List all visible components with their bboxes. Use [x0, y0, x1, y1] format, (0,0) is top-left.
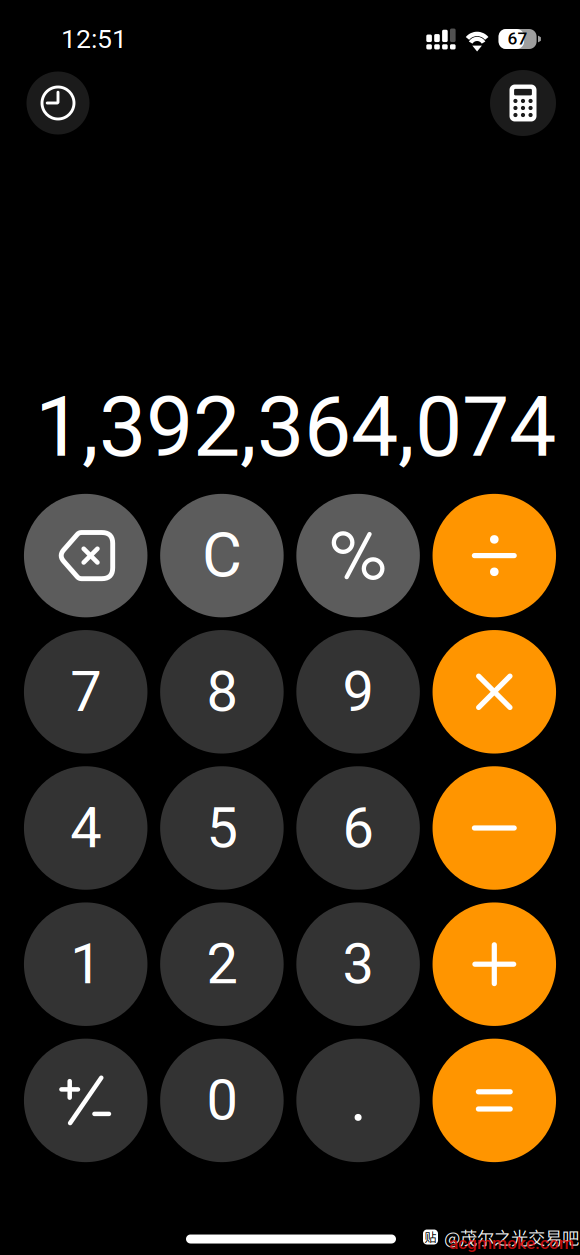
- button[interactable]: 2: [160, 902, 284, 1026]
- button[interactable]: 1: [24, 902, 147, 1026]
- button[interactable]: 5: [160, 766, 284, 890]
- staticText: 2: [206, 931, 237, 997]
- button[interactable]: Toggle sign: [24, 1039, 147, 1162]
- button[interactable]: Percent: [296, 494, 420, 617]
- staticText: acgmmoke.com: [449, 1233, 574, 1253]
- staticText: 7: [70, 659, 101, 725]
- button[interactable]: Subtract: [432, 766, 556, 890]
- button[interactable]: 4: [24, 766, 147, 890]
- button[interactable]: Equals: [432, 1039, 556, 1162]
- button[interactable]: C: [160, 494, 284, 617]
- staticText: 8: [206, 659, 237, 725]
- button[interactable]: Divide: [432, 494, 556, 617]
- button[interactable]: 7: [24, 630, 147, 753]
- button[interactable]: Add: [432, 902, 556, 1026]
- staticText: 6: [343, 795, 374, 861]
- staticText: 3: [343, 931, 374, 997]
- staticText: 12:51: [61, 23, 127, 55]
- staticText: 0: [206, 1068, 237, 1133]
- button[interactable]: Delete: [24, 494, 147, 617]
- button[interactable]: 3: [296, 902, 420, 1026]
- staticText: 5: [206, 795, 237, 861]
- button[interactable]: Decimal point: [296, 1039, 420, 1162]
- button[interactable]: 9: [296, 630, 420, 753]
- button[interactable]: Multiply: [432, 630, 556, 753]
- button[interactable]: 0: [160, 1039, 284, 1162]
- staticText: 4: [70, 795, 101, 861]
- staticText: 1,392,364,074: [35, 378, 556, 476]
- staticText: C: [202, 520, 242, 592]
- staticText: 贴: [424, 1228, 436, 1246]
- button[interactable]: History: [26, 71, 89, 134]
- button[interactable]: 6: [296, 766, 420, 890]
- staticText: 1: [70, 931, 101, 997]
- staticText: @茂尔之光交易吧: [444, 1224, 579, 1250]
- button[interactable]: Calculator: [490, 70, 556, 136]
- button[interactable]: 8: [160, 630, 284, 753]
- staticText: 67: [508, 28, 528, 49]
- staticText: 9: [343, 659, 374, 725]
